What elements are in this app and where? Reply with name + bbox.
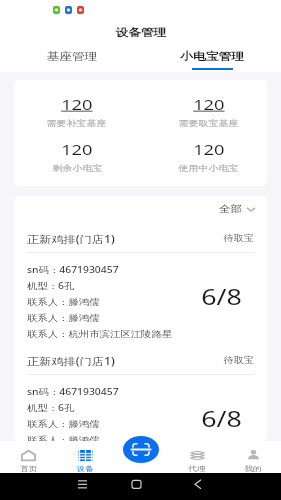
- staticText: 120: [193, 139, 225, 159]
- button[interactable]: 正新鸡排(门店1): [14, 222, 267, 344]
- staticText: 联系人：滕鸿儒: [27, 297, 100, 308]
- staticText: sn码：4671930457: [27, 386, 120, 398]
- staticText: 小电宝管理: [180, 50, 245, 63]
- staticText: 6/8: [201, 281, 243, 311]
- staticText: 剩余小电宝: [52, 163, 102, 173]
- button[interactable]: 首页: [0, 441, 57, 473]
- staticText: 120: [193, 94, 225, 114]
- staticText: 需要补宝基座: [46, 118, 107, 128]
- staticText: sn码：4671930457: [27, 264, 120, 276]
- staticText: 联系人：杭州市滨江区江陵路星: [27, 329, 172, 340]
- staticText: 联系人：滕鸿儒: [27, 435, 100, 441]
- staticText: 机型：6孔: [27, 280, 75, 292]
- staticText: 待取宝: [223, 355, 255, 366]
- button[interactable]: 120: [145, 94, 267, 128]
- staticText: 正新鸡排(门店1): [27, 354, 115, 368]
- staticText: 120: [61, 139, 93, 159]
- staticText: 联系人：滕鸿儒: [27, 313, 100, 324]
- button[interactable]: 基座管理: [2, 44, 142, 72]
- staticText: 正新鸡排(门店1): [27, 232, 115, 246]
- button[interactable]: 设备: [57, 441, 113, 473]
- staticText: 120: [61, 94, 93, 114]
- staticText: 6/8: [201, 403, 243, 433]
- staticText: 使用中小电宝: [178, 163, 239, 173]
- button[interactable]: 扫一扫: [123, 436, 159, 463]
- button[interactable]: 120: [14, 139, 140, 173]
- button[interactable]: 全部: [209, 199, 267, 219]
- button[interactable]: 我的: [225, 441, 281, 473]
- button[interactable]: 代理: [169, 441, 225, 473]
- staticText: 联系人：滕鸿儒: [27, 419, 100, 430]
- staticText: 待取宝: [223, 233, 255, 244]
- staticText: 全部: [219, 203, 242, 215]
- staticText: 我的: [244, 464, 262, 473]
- staticText: 设备管理: [115, 26, 167, 39]
- staticText: 基座管理: [46, 50, 98, 63]
- button[interactable]: 小电宝管理: [142, 44, 281, 72]
- staticText: 机型：6孔: [27, 402, 75, 414]
- staticText: 代理: [188, 464, 206, 473]
- staticText: 设备: [76, 464, 94, 473]
- button[interactable]: 正新鸡排(门店1): [14, 344, 267, 441]
- staticText: 需要取宝基座: [178, 118, 239, 128]
- button[interactable]: 120: [14, 94, 140, 128]
- staticText: 首页: [20, 464, 38, 473]
- button[interactable]: 120: [145, 139, 267, 173]
